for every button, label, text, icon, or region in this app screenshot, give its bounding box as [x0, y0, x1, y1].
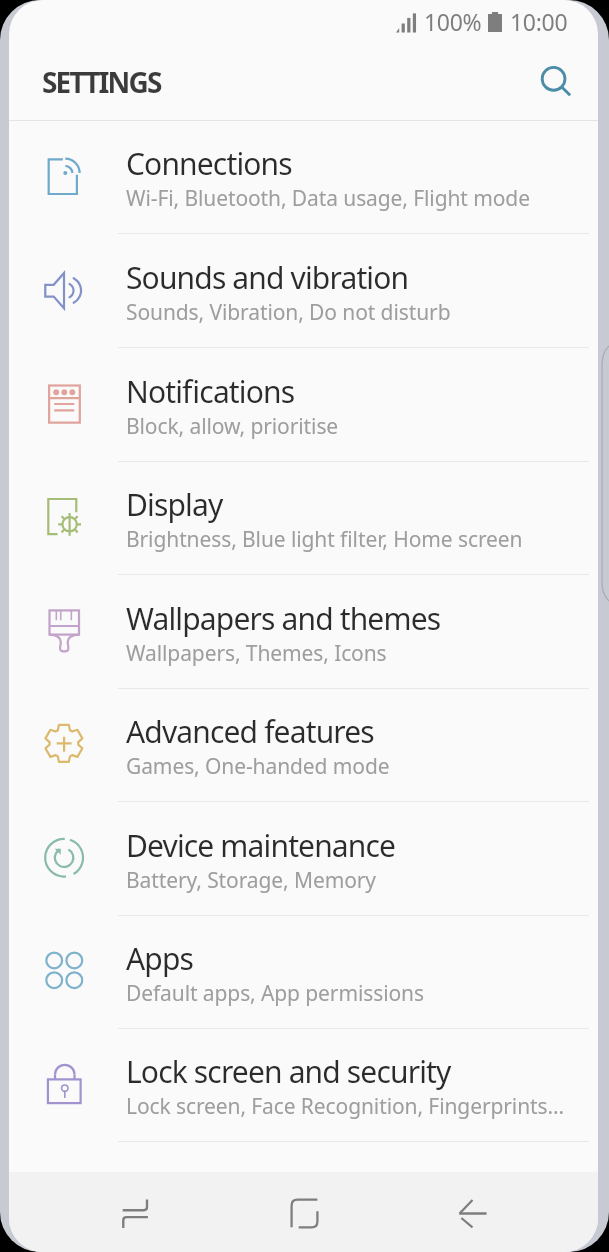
staticText: Brightness, Blue light filter, Home scre… — [126, 525, 523, 554]
staticText: Games, One-handed mode — [126, 752, 390, 781]
button[interactable]: Home — [220, 1172, 388, 1252]
button[interactable]: Advanced features — [9, 689, 598, 801]
button[interactable]: Apps — [9, 916, 598, 1028]
button[interactable]: Search — [529, 54, 585, 110]
staticText: Sounds and vibration — [126, 257, 409, 298]
staticText: Default apps, App permissions — [126, 979, 424, 1008]
staticText: 10:00 — [510, 6, 568, 37]
button[interactable]: Connections — [9, 121, 598, 233]
button[interactable]: Notifications — [9, 348, 598, 461]
staticText: Notifications — [126, 371, 295, 412]
staticText: Advanced features — [126, 711, 374, 752]
staticText: Sounds, Vibration, Do not disturb — [126, 298, 451, 327]
button[interactable]: Device maintenance — [9, 802, 598, 915]
staticText: Lock screen and security — [126, 1051, 451, 1092]
button[interactable]: Display — [9, 462, 598, 574]
button[interactable]: Lock screen and security — [9, 1029, 598, 1141]
staticText: Device maintenance — [126, 825, 396, 866]
button[interactable]: Recent apps — [51, 1172, 220, 1252]
staticText: Connections — [126, 143, 292, 184]
staticText: Wallpapers and themes — [126, 598, 441, 639]
staticText: Battery, Storage, Memory — [126, 866, 376, 895]
staticText: SETTINGS — [42, 63, 161, 101]
staticText: Lock screen, Face Recognition, Fingerpri… — [126, 1092, 565, 1121]
button[interactable]: Back — [388, 1172, 556, 1252]
staticText: Wallpapers, Themes, Icons — [126, 639, 387, 668]
button[interactable]: Wallpapers and themes — [9, 575, 598, 688]
staticText: Block, allow, prioritise — [126, 412, 339, 441]
staticText: 100% — [424, 6, 482, 37]
button[interactable]: Sounds and vibration — [9, 234, 598, 347]
staticText: Display — [126, 484, 223, 525]
staticText: Wi-Fi, Bluetooth, Data usage, Flight mod… — [126, 184, 530, 213]
staticText: Apps — [126, 938, 194, 979]
